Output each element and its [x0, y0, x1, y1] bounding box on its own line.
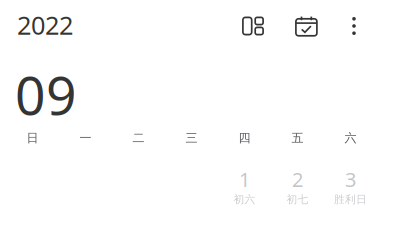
staticText: 初七 [286, 193, 308, 206]
button[interactable]: 2 [271, 166, 324, 208]
button[interactable]: 2022 [17, 0, 73, 44]
button[interactable]: 3 [324, 166, 377, 208]
button[interactable]: More options [334, 0, 374, 44]
staticText: 胜利日 [334, 193, 367, 206]
button[interactable]: Go to today [279, 0, 334, 44]
staticText: 六 [344, 131, 356, 145]
button[interactable]: 09 [15, 59, 77, 130]
staticText: 三 [185, 131, 197, 145]
staticText: 二 [132, 131, 144, 145]
staticText: 1 [239, 166, 250, 193]
staticText: 2 [292, 166, 303, 193]
staticText: 一 [79, 131, 91, 145]
staticText: 日 [26, 131, 38, 145]
staticText: 四 [238, 131, 250, 145]
button[interactable]: Switch layout [227, 0, 279, 44]
staticText: 初六 [233, 193, 255, 206]
staticText: 3 [345, 166, 356, 193]
staticText: 2022 [17, 8, 73, 42]
button[interactable]: 1 [218, 166, 271, 208]
staticText: 09 [15, 59, 77, 130]
staticText: 五 [291, 131, 303, 145]
